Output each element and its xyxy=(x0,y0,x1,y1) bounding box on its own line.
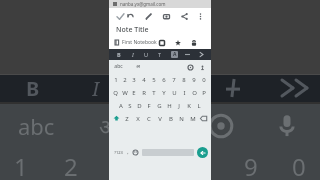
staticText: 8 xyxy=(196,150,210,180)
button[interactable]: 0 xyxy=(199,73,209,86)
button[interactable]: Reminder xyxy=(157,38,167,48)
staticText: 2 xyxy=(123,76,127,84)
staticText: I xyxy=(92,75,100,101)
button[interactable]: 5 xyxy=(149,73,159,86)
button[interactable]: I xyxy=(179,86,189,99)
staticText: 3 xyxy=(112,150,126,180)
staticText: अ xyxy=(136,63,140,70)
button[interactable]: A xyxy=(116,99,125,112)
button[interactable]: C xyxy=(143,112,154,125)
button[interactable]: Enter xyxy=(197,147,208,158)
staticText: P xyxy=(202,89,206,97)
staticText: A xyxy=(119,102,123,110)
staticText: 9 xyxy=(192,76,196,84)
staticText: U xyxy=(172,89,177,97)
button[interactable]: Text style xyxy=(168,49,180,60)
button[interactable]: Z xyxy=(122,112,132,125)
button[interactable]: J xyxy=(174,99,184,112)
button[interactable]: Underline xyxy=(140,49,152,60)
staticText: F xyxy=(147,102,151,110)
staticText: X xyxy=(136,115,140,123)
staticText: abc xyxy=(18,111,55,141)
button[interactable]: U xyxy=(169,86,179,99)
staticText: W xyxy=(122,89,128,97)
button[interactable]: More formatting xyxy=(195,49,207,60)
button[interactable]: Backspace xyxy=(198,112,209,125)
button[interactable]: 1 xyxy=(111,73,120,86)
staticText: U xyxy=(144,51,149,58)
button[interactable]: S xyxy=(125,99,134,112)
button[interactable]: F xyxy=(144,99,154,112)
button[interactable]: K xyxy=(184,99,194,112)
staticText: nanba.yx@gmail.com xyxy=(120,1,166,7)
button[interactable]: Favorite xyxy=(173,38,183,48)
button[interactable]: ?123 xyxy=(112,127,124,178)
button[interactable]: Italic xyxy=(127,49,139,60)
staticText: 2 xyxy=(64,150,78,180)
button[interactable]: V xyxy=(154,112,165,125)
staticText: R xyxy=(142,89,146,97)
staticText: B xyxy=(26,75,40,101)
staticText: D xyxy=(137,102,142,110)
button[interactable]: Shift xyxy=(111,112,122,125)
button[interactable]: More options xyxy=(196,11,205,21)
button[interactable]: X xyxy=(132,112,143,125)
button[interactable]: Voice input xyxy=(198,63,206,71)
button[interactable]: R xyxy=(139,86,149,99)
staticText: I xyxy=(183,89,186,97)
button[interactable]: B xyxy=(165,112,176,125)
button[interactable]: Keyboard settings xyxy=(186,63,194,71)
staticText: , xyxy=(127,149,129,156)
button[interactable]: D xyxy=(134,99,144,112)
button[interactable]: 4 xyxy=(139,73,149,86)
button[interactable]: M xyxy=(187,112,198,125)
button[interactable]: P xyxy=(199,86,209,99)
button[interactable]: First Notebook xyxy=(115,39,157,46)
staticText: O xyxy=(192,89,197,97)
staticText: G xyxy=(157,102,162,110)
staticText: abc xyxy=(114,63,123,70)
button[interactable]: 3 xyxy=(129,73,139,86)
button[interactable]: 7 xyxy=(169,73,179,86)
staticText: 1 xyxy=(14,150,28,180)
button[interactable]: L xyxy=(194,99,204,112)
staticText: K xyxy=(187,102,191,110)
button[interactable]: Emoji xyxy=(131,127,140,178)
staticText: V xyxy=(158,115,162,123)
staticText: Y xyxy=(162,89,166,97)
button[interactable]: 6 xyxy=(159,73,169,86)
button[interactable]: Undo xyxy=(125,11,135,21)
button[interactable]: O xyxy=(189,86,199,99)
staticText: T xyxy=(158,51,162,58)
button[interactable]: Attach xyxy=(161,11,171,21)
button[interactable]: W xyxy=(120,86,129,99)
button[interactable]: T xyxy=(149,86,159,99)
button[interactable]: Indent xyxy=(181,49,193,60)
staticText: 4 xyxy=(142,76,146,84)
button[interactable]: Y xyxy=(159,86,169,99)
button[interactable]: 2 xyxy=(120,73,129,86)
button[interactable]: Done xyxy=(115,11,125,21)
staticText: Q xyxy=(113,89,118,97)
button[interactable]: Strikethrough xyxy=(154,49,166,60)
staticText: ?123 xyxy=(114,150,123,155)
button[interactable]: 9 xyxy=(189,73,199,86)
staticText: 8 xyxy=(182,76,186,84)
button[interactable]: H xyxy=(164,99,174,112)
staticText: 7 xyxy=(172,76,176,84)
button[interactable]: E xyxy=(129,86,139,99)
button[interactable]: N xyxy=(176,112,187,125)
button[interactable]: Q xyxy=(111,86,120,99)
staticText: M xyxy=(190,115,196,123)
staticText: 0 xyxy=(202,76,206,84)
staticText: T xyxy=(152,89,156,97)
button[interactable]: Edit xyxy=(143,11,153,21)
button[interactable]: G xyxy=(154,99,164,112)
button[interactable]: Bold xyxy=(113,49,125,60)
button[interactable]: Share xyxy=(179,11,189,21)
button[interactable]: Lock xyxy=(189,38,199,48)
staticText: 5 xyxy=(152,76,156,84)
button[interactable]: 8 xyxy=(179,73,189,86)
